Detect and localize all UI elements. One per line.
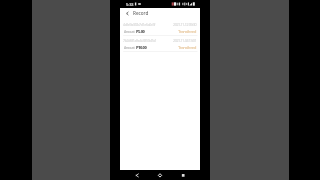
button[interactable]: Recents	[178, 170, 188, 180]
staticText: P5.00	[136, 29, 145, 34]
staticText: 5:33	[126, 2, 134, 7]
staticText: 2021-11-04 13:01	[173, 38, 197, 43]
staticText: Transfered	[178, 28, 197, 34]
staticText: Record	[133, 10, 149, 16]
staticText: P10.00	[136, 45, 147, 50]
staticText: 4c8e9a3f2b7d1e6a0c5f	[123, 22, 155, 27]
button[interactable]: 7b2d6f1a9e4c3850d7a1	[120, 36, 200, 52]
staticText: Amount	[124, 45, 135, 50]
staticText: 7b2d6f1a9e4c3850d7a1	[123, 38, 157, 43]
staticText: Transfered	[178, 44, 197, 50]
button[interactable]: Home	[155, 170, 165, 180]
button[interactable]: Back	[132, 170, 142, 180]
staticText: Amount	[124, 29, 135, 34]
button[interactable]: Back	[123, 9, 131, 17]
button[interactable]: 4c8e9a3f2b7d1e6a0c5f	[120, 20, 200, 36]
staticText: 2021-11-12 09:30	[173, 22, 197, 27]
